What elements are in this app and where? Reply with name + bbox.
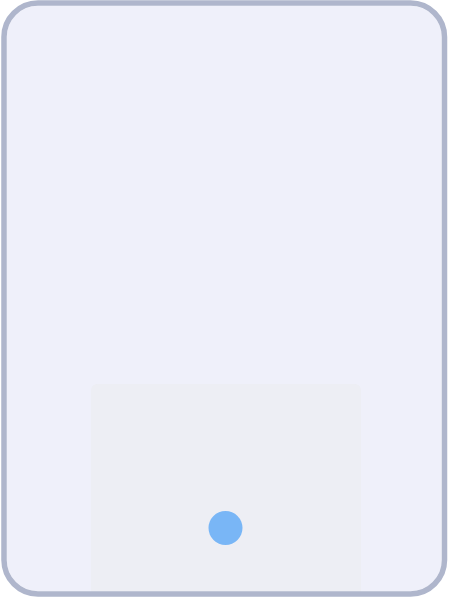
button[interactable]: Device screen	[0, 0, 450, 600]
